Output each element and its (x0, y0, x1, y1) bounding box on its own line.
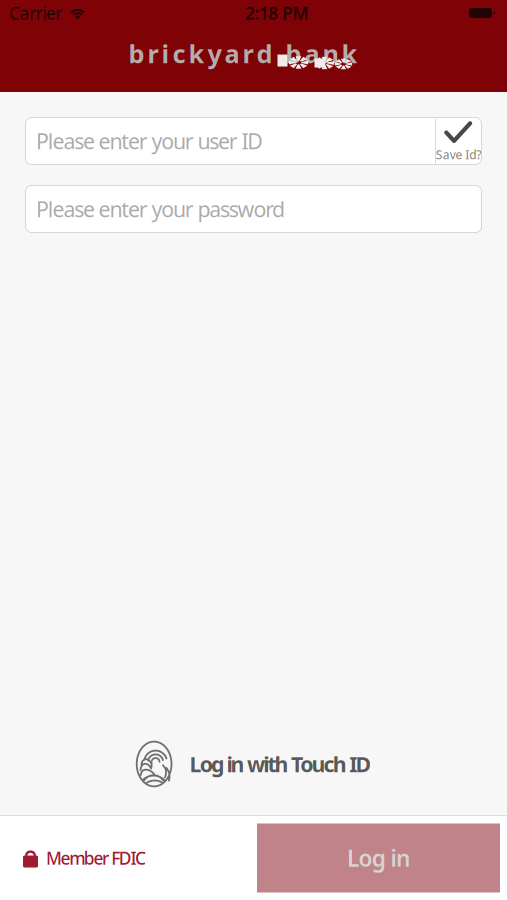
staticText: Please enter your user ID (36, 127, 263, 155)
button[interactable]: Log in (257, 823, 500, 892)
staticText: Please enter your password (36, 195, 285, 223)
button[interactable]: Log in with Touch ID (136, 735, 371, 793)
staticText: Log in with Touch ID (190, 750, 371, 778)
staticText: brickyard bank (128, 36, 357, 70)
staticText: 2:18 PM (245, 1, 308, 24)
staticText: Carrier (9, 1, 63, 24)
button[interactable]: Save Id? (435, 117, 482, 164)
staticText: Member FDIC (46, 846, 146, 869)
button[interactable]: Member FDIC (0, 816, 146, 900)
staticText: Log in (347, 843, 410, 873)
staticText: Save Id? (436, 146, 481, 162)
